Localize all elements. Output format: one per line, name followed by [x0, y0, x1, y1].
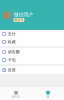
- button[interactable]: 通讯录: [0, 87, 32, 100]
- staticText: 微信号: [14, 18, 23, 22]
- button[interactable]: 朋友圈: [0, 48, 64, 56]
- staticText: 卡包: [8, 57, 16, 62]
- button[interactable]: 收藏: [0, 38, 64, 46]
- staticText: 朋友圈: [8, 49, 20, 54]
- button[interactable]: 支付: [0, 30, 64, 38]
- staticText: 通讯录: [11, 95, 20, 98]
- button[interactable]: 我: [32, 87, 64, 100]
- staticText: 微信用户: [13, 11, 33, 18]
- button[interactable]: 卡包: [0, 56, 64, 64]
- button[interactable]: 设置: [0, 66, 64, 74]
- staticText: 我: [46, 95, 49, 98]
- staticText: 支付: [8, 31, 16, 36]
- staticText: 设置: [8, 67, 16, 72]
- staticText: 收藏: [8, 39, 16, 44]
